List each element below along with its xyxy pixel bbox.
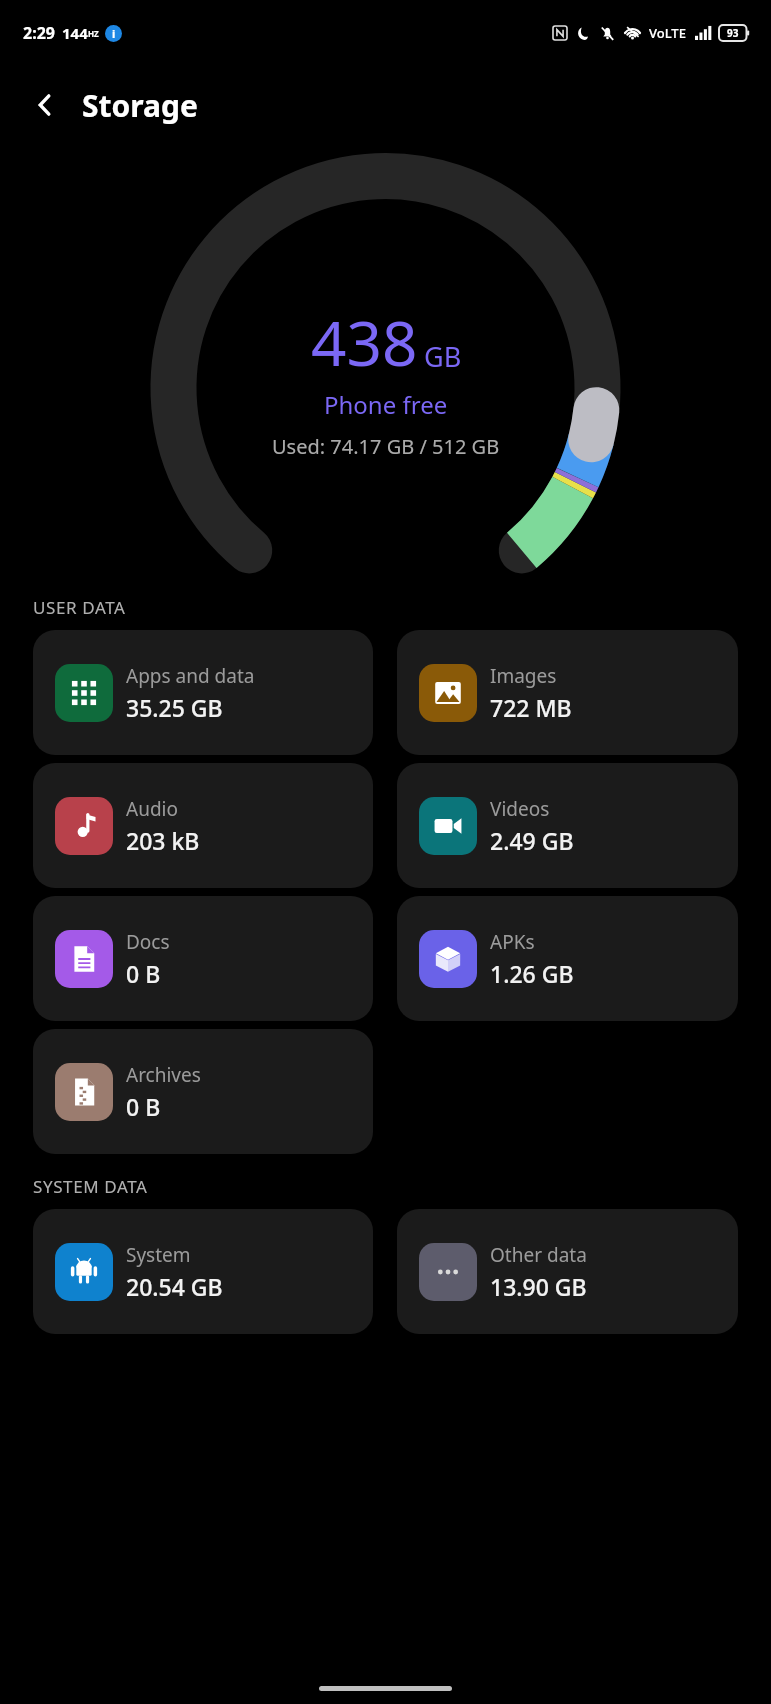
staticText: System [126,1242,191,1268]
staticText: APKs [490,929,535,955]
staticText: 13.90 GB [490,1271,587,1302]
button[interactable]: APKs [397,896,738,1021]
staticText: Archives [126,1062,201,1088]
staticText: HZ [88,28,99,39]
button[interactable]: Audio [33,763,373,888]
staticText: Used: 74.17 GB / 512 GB [272,433,500,460]
button[interactable]: Docs [33,896,373,1021]
staticText: Storage [82,85,198,126]
staticText: 1.26 GB [490,958,574,989]
staticText: Other data [490,1242,587,1268]
button[interactable]: System [33,1209,373,1334]
staticText: SYSTEM DATA [33,1175,148,1198]
staticText: 2:29 [23,22,55,44]
staticText: 2.49 GB [490,825,574,856]
staticText: Phone free [324,388,448,421]
staticText: USER DATA [33,596,126,619]
staticText: 144 [62,23,88,43]
button[interactable]: Videos [397,763,738,888]
staticText: Apps and data [126,663,255,689]
staticText: 35.25 GB [126,692,223,723]
staticText: 0 B [126,1091,161,1122]
staticText: 93 [727,26,739,40]
staticText: Docs [126,929,170,955]
staticText: GB [424,338,462,375]
button[interactable]: Images [397,630,738,755]
staticText: 722 MB [490,692,572,723]
staticText: i [112,26,116,41]
staticText: Videos [490,796,550,822]
staticText: 20.54 GB [126,1271,223,1302]
staticText: VoLTE [649,24,686,42]
button[interactable]: Apps and data [33,630,373,755]
staticText: 0 B [126,958,161,989]
staticText: Audio [126,796,178,822]
button[interactable]: Archives [33,1029,373,1154]
staticText: 203 kB [126,825,200,856]
button[interactable]: Back [20,80,70,130]
staticText: Images [490,663,557,689]
staticText: 438 [311,300,418,384]
button[interactable]: Other data [397,1209,738,1334]
